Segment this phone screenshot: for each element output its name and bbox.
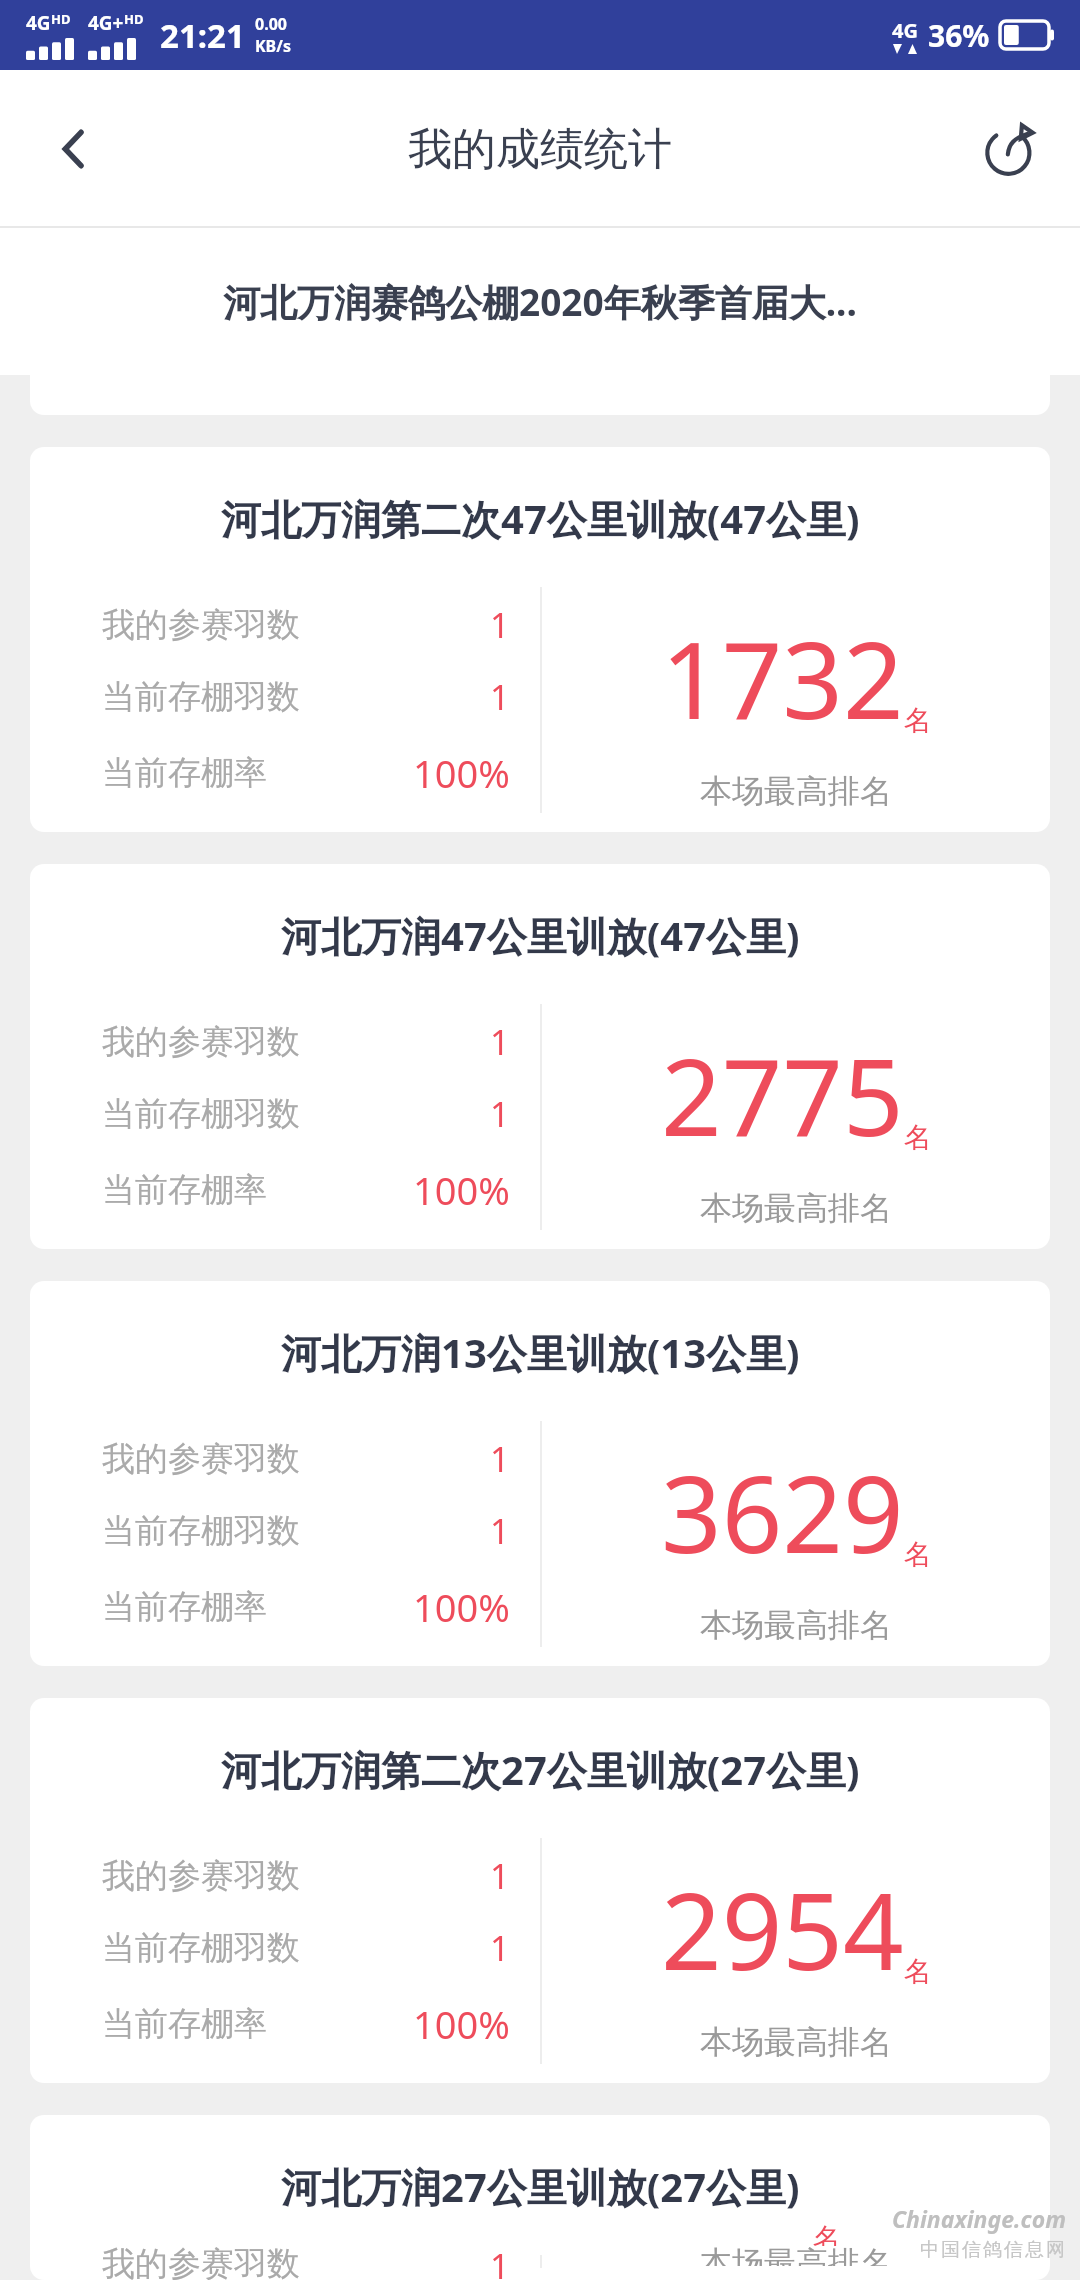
staticText: 当前存棚羽数: [102, 1510, 300, 1552]
staticText: 我的参赛羽数: [102, 1855, 300, 1897]
staticText: 0: [752, 2221, 813, 2258]
staticText: 名: [904, 1120, 932, 1155]
staticText: 名: [904, 703, 932, 738]
staticText: Chinaxinge.com: [892, 2203, 1066, 2234]
staticText: 河北万润赛鸽公棚2020年秋季首届大...: [223, 276, 857, 327]
staticText: 2954: [661, 1857, 904, 2001]
staticText: HD: [51, 10, 71, 28]
staticText: 3629: [661, 1440, 904, 1584]
staticText: 4G: [26, 10, 51, 36]
staticText: 我的参赛羽数: [102, 1021, 300, 1063]
staticText: 当前存棚率: [102, 752, 267, 794]
staticText: 100%: [413, 1581, 510, 1633]
staticText: 1: [490, 674, 510, 720]
button[interactable]: 河北万润47公里训放(47公里): [30, 864, 1050, 1249]
staticText: 1: [490, 1091, 510, 1137]
staticText: KB/s: [255, 35, 291, 57]
staticText: 当前存棚羽数: [102, 1093, 300, 1135]
staticText: 4G+: [88, 10, 124, 36]
staticText: 我的参赛羽数: [102, 1438, 300, 1480]
staticText: 1: [490, 1508, 510, 1554]
staticText: HD: [124, 10, 144, 28]
button[interactable]: 河北万润27公里训放(27公里): [30, 2115, 1050, 2280]
staticText: 当前存棚羽数: [102, 676, 300, 718]
button[interactable]: 河北万润第二次47公里训放(47公里): [30, 447, 1050, 832]
staticText: 100%: [413, 747, 510, 799]
staticText: 21:21: [160, 13, 245, 58]
staticText: 当前存棚率: [102, 1586, 267, 1628]
staticText: 河北万润第二次27公里训放(27公里): [221, 1742, 860, 1797]
staticText: 1: [490, 602, 510, 648]
staticText: 100%: [413, 1998, 510, 2050]
staticText: 1: [490, 1019, 510, 1065]
staticText: 当前存棚率: [102, 1169, 267, 1211]
staticText: 本场最高排名: [700, 1605, 892, 1645]
staticText: 当前存棚羽数: [102, 1927, 300, 1969]
staticText: 本场最高排名: [700, 771, 892, 811]
staticText: 名: [813, 2221, 841, 2246]
button[interactable]: Back: [30, 105, 118, 193]
staticText: 0.00: [255, 13, 287, 35]
staticText: 本场最高排名: [700, 2243, 892, 2266]
staticText: 我的成绩统计: [408, 122, 672, 177]
staticText: 100%: [413, 1164, 510, 1216]
staticText: 1: [490, 2243, 510, 2280]
staticText: 4G: [892, 17, 918, 44]
staticText: 36%: [928, 15, 990, 56]
staticText: 中国信鸽信息网: [919, 2238, 1066, 2262]
staticText: 河北万润47公里训放(47公里): [281, 908, 800, 963]
staticText: 本场最高排名: [700, 1188, 892, 1228]
button[interactable]: 河北万润第二次27公里训放(27公里): [30, 1698, 1050, 2083]
staticText: 名: [904, 1954, 932, 1989]
button[interactable]: 河北万润赛鸽公棚2020年秋季首届大...: [0, 228, 1080, 375]
staticText: 1: [490, 1436, 510, 1482]
staticText: 当前存棚率: [102, 2003, 267, 2045]
staticText: 名: [904, 1537, 932, 1572]
staticText: 本场最高排名: [700, 2022, 892, 2062]
button[interactable]: 河北万润13公里训放(13公里): [30, 1281, 1050, 1666]
staticText: 1: [490, 1853, 510, 1899]
staticText: 2775: [661, 1023, 904, 1167]
staticText: 我的参赛羽数: [102, 604, 300, 646]
staticText: 河北万润27公里训放(27公里): [281, 2159, 800, 2214]
staticText: 河北万润第二次47公里训放(47公里): [221, 491, 860, 546]
staticText: 当前存棚率: [102, 312, 267, 354]
staticText: 1732: [661, 606, 904, 750]
button[interactable]: 当前存棚率: [30, 228, 1050, 415]
staticText: 我的参赛羽数: [102, 2243, 300, 2280]
button[interactable]: Share: [966, 105, 1054, 193]
staticText: 1: [490, 1925, 510, 1971]
staticText: 河北万润13公里训放(13公里): [281, 1325, 800, 1380]
